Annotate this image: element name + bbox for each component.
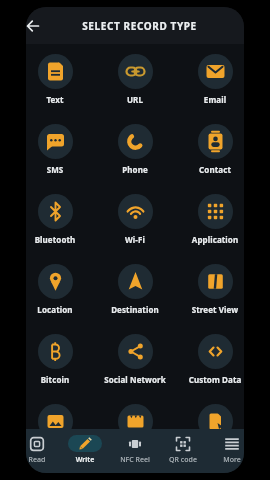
button[interactable]: Wi-Fi — [95, 194, 175, 245]
button[interactable]: More — [208, 435, 244, 465]
button[interactable]: Custom Data — [175, 334, 244, 385]
staticText: Social Network — [95, 374, 175, 385]
button[interactable]: NFC Reel — [111, 435, 159, 465]
staticText: Bluetooth — [26, 234, 95, 245]
button[interactable]: File — [175, 404, 244, 455]
staticText: Contact — [175, 164, 244, 175]
button[interactable]: Email — [175, 54, 244, 105]
staticText: Wi-Fi — [95, 234, 175, 245]
staticText: SMS — [26, 164, 95, 175]
button[interactable]: Bitcoin — [26, 334, 95, 385]
staticText: NFC Reel — [111, 455, 159, 465]
staticText: Location — [26, 304, 95, 315]
staticText: Custom Data — [175, 374, 244, 385]
button[interactable]: Location — [26, 264, 95, 315]
staticText: More — [208, 455, 244, 465]
button[interactable]: Street View — [175, 264, 244, 315]
staticText: Read — [26, 455, 61, 465]
staticText: Image — [26, 444, 95, 455]
button[interactable]: Write — [61, 435, 109, 465]
button[interactable]: Social Network — [95, 334, 175, 385]
button[interactable]: Contact — [175, 124, 244, 175]
button[interactable]: Application — [175, 194, 244, 245]
button[interactable]: SMS — [26, 124, 95, 175]
staticText: Movie — [95, 444, 175, 455]
staticText: Destination — [95, 304, 175, 315]
staticText: Email — [175, 94, 244, 105]
button[interactable]: QR code — [159, 435, 207, 465]
staticText: URL — [95, 94, 175, 105]
staticText: Bitcoin — [26, 374, 95, 385]
button[interactable]: Bluetooth — [26, 194, 95, 245]
button[interactable]: Read — [26, 435, 61, 465]
staticText: QR code — [159, 455, 207, 465]
staticText: Street View — [175, 304, 244, 315]
staticText: Application — [175, 234, 244, 245]
staticText: Text — [26, 94, 95, 105]
button[interactable]: Phone — [95, 124, 175, 175]
staticText: File — [175, 444, 244, 455]
button[interactable]: URL — [95, 54, 175, 105]
button[interactable]: Movie — [95, 404, 175, 455]
staticText: SELECT RECORD TYPE — [82, 19, 197, 33]
staticText: Phone — [95, 164, 175, 175]
staticText: Write — [61, 455, 109, 465]
button[interactable] — [26, 14, 45, 38]
button[interactable]: Text — [26, 54, 95, 105]
button[interactable]: Image — [26, 404, 95, 455]
button[interactable]: Destination — [95, 264, 175, 315]
